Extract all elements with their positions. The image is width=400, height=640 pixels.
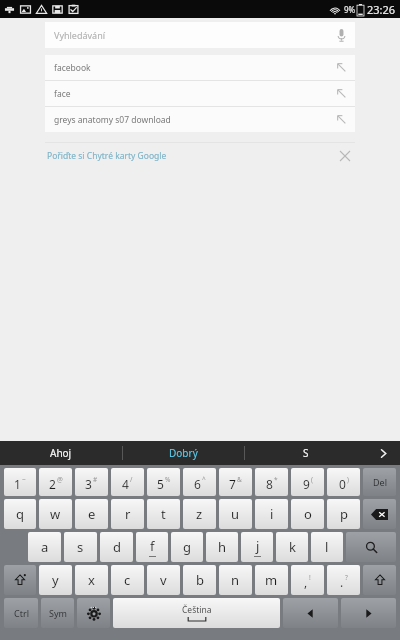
button[interactable]: Čeština [113, 598, 280, 628]
staticText: * [274, 475, 278, 484]
button[interactable]: facebook [45, 55, 355, 80]
staticText: # [93, 475, 98, 484]
button[interactable]: n [219, 565, 252, 595]
button[interactable]: i [255, 499, 288, 529]
button[interactable]: o [291, 499, 324, 529]
button[interactable]: r [111, 499, 144, 529]
staticText: 2 [49, 476, 56, 492]
button[interactable]: greys anatomy s07 download [45, 107, 355, 132]
button[interactable]: Pořiďte si Chytré karty Google [47, 150, 167, 162]
button[interactable]: b [183, 565, 216, 595]
staticText: f [150, 537, 155, 555]
button[interactable]: x [75, 565, 108, 595]
button[interactable]: More suggestions [366, 441, 400, 465]
staticText: facebook [54, 62, 91, 74]
staticText: 23:26 [367, 2, 396, 17]
staticText: greys anatomy s07 download [54, 114, 171, 126]
staticText: n [231, 571, 240, 589]
button[interactable]: 8 [255, 468, 288, 496]
staticText: c [124, 571, 131, 589]
staticText: 8 [266, 476, 273, 492]
button[interactable]: g [171, 532, 203, 562]
button[interactable]: s [64, 532, 97, 562]
staticText: S [303, 446, 309, 460]
button[interactable]: Move cursor right [341, 598, 396, 628]
button[interactable]: Voice search [331, 25, 351, 45]
staticText: ! [309, 573, 311, 582]
button[interactable]: a [28, 532, 61, 562]
staticText: b [196, 571, 204, 589]
button[interactable]: 6 [183, 468, 216, 496]
staticText: e [88, 505, 96, 523]
button[interactable]: Dismiss [335, 146, 355, 166]
button[interactable]: m [255, 565, 288, 595]
button[interactable]: Move cursor left [283, 598, 338, 628]
staticText: q [16, 505, 24, 523]
button[interactable]: p [327, 499, 360, 529]
staticText: 4 [122, 476, 129, 492]
button[interactable]: d [100, 532, 133, 562]
button[interactable]: 9 [291, 468, 324, 496]
button[interactable]: face [45, 81, 355, 106]
button[interactable]: 2 [39, 468, 72, 496]
staticText: % [165, 475, 171, 484]
staticText: Dobrý [169, 446, 198, 460]
button[interactable]: 4 [111, 468, 144, 496]
button[interactable]: Keyboard settings [77, 598, 110, 628]
staticText: ~ [22, 475, 26, 484]
staticText: , [304, 574, 308, 590]
button[interactable]: h [206, 532, 238, 562]
button[interactable]: t [147, 499, 180, 529]
button[interactable]: Caps lock [4, 565, 36, 595]
staticText: k [289, 538, 296, 556]
staticText: / [130, 475, 133, 484]
button[interactable]: Sym [41, 598, 74, 628]
button[interactable]: Ahoj [0, 441, 122, 465]
staticText: ) [347, 475, 349, 484]
button[interactable]: S [245, 441, 366, 465]
button[interactable]: Dobrý [123, 441, 244, 465]
button[interactable]: Backspace [363, 499, 396, 529]
button[interactable]: v [147, 565, 180, 595]
button[interactable]: u [219, 499, 252, 529]
staticText: s [77, 538, 84, 556]
button[interactable]: q [4, 499, 36, 529]
staticText: @ [57, 475, 63, 484]
button[interactable]: Ctrl [4, 598, 38, 628]
staticText: t [161, 505, 166, 523]
button[interactable]: , [291, 565, 324, 595]
button[interactable]: k [276, 532, 308, 562]
staticText: u [231, 505, 240, 523]
staticText: & [237, 475, 242, 484]
staticText: y [52, 571, 59, 589]
button[interactable]: 5 [147, 468, 180, 496]
button[interactable]: l [311, 532, 343, 562]
button[interactable]: z [183, 499, 216, 529]
button[interactable]: 1 [4, 468, 36, 496]
button[interactable]: w [39, 499, 72, 529]
button[interactable]: . [327, 565, 360, 595]
button[interactable]: Vyhledávání [45, 22, 355, 48]
staticText: face [54, 88, 71, 100]
button[interactable]: 7 [219, 468, 252, 496]
staticText: w [50, 505, 61, 523]
button[interactable]: e [75, 499, 108, 529]
staticText: m [265, 571, 278, 589]
staticText: z [196, 505, 203, 523]
staticText: r [125, 505, 131, 523]
button[interactable]: j [241, 532, 273, 562]
staticText: o [304, 505, 312, 523]
button[interactable]: f [136, 532, 168, 562]
staticText: 5 [157, 476, 164, 492]
staticText: Ahoj [50, 446, 72, 460]
button[interactable]: y [39, 565, 72, 595]
button[interactable]: 3 [75, 468, 108, 496]
button[interactable]: c [111, 565, 144, 595]
button[interactable]: 0 [327, 468, 360, 496]
staticText: i [270, 505, 274, 523]
button[interactable]: Del [363, 468, 396, 496]
button[interactable]: Search [346, 532, 396, 562]
button[interactable]: Shift [363, 565, 396, 595]
staticText: h [218, 538, 227, 556]
staticText: 7 [229, 476, 236, 492]
